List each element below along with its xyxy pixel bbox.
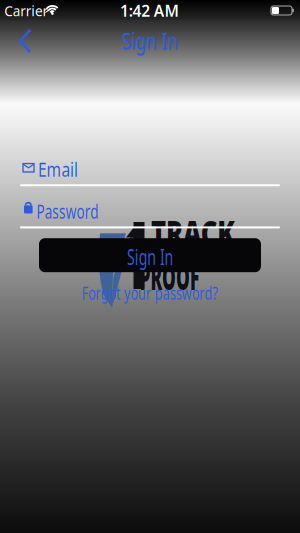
button[interactable]: Password: [20, 200, 280, 228]
staticText: PROOF: [109, 253, 229, 299]
button[interactable]: Back: [19, 29, 32, 53]
staticText: Password: [36, 198, 127, 224]
staticText: 1:42 AM: [119, 0, 180, 21]
staticText: Sign In: [113, 26, 187, 56]
staticText: Forgot your password?: [56, 281, 243, 304]
staticText: Email: [38, 156, 89, 182]
staticText: Carrier: [3, 1, 50, 20]
button[interactable]: Forgot your password?: [56, 281, 243, 304]
button[interactable]: Sign In: [39, 238, 261, 272]
staticText: TRACK: [134, 208, 252, 256]
button[interactable]: Email: [20, 162, 280, 186]
staticText: Sign In: [115, 242, 185, 271]
